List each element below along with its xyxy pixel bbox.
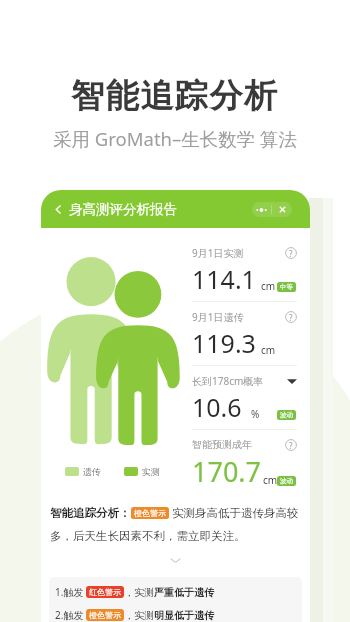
staticText: 波动: [280, 477, 293, 485]
button[interactable]: 9月1日遗传: [192, 302, 297, 365]
staticText: 2.触发: [55, 608, 86, 622]
staticText: 红色警示: [89, 587, 121, 597]
button[interactable]: More and close: [252, 202, 292, 217]
staticText: 9月1日实测: [192, 246, 244, 260]
staticText: 实测: [142, 466, 160, 477]
button[interactable]: 智能预测成年: [192, 430, 297, 495]
staticText: cm: [261, 343, 276, 357]
staticText: 中等: [280, 283, 293, 291]
staticText: 波动: [280, 411, 293, 419]
button[interactable]: Help: [285, 439, 297, 451]
staticText: 明显低于遗传: [154, 609, 214, 622]
staticText: 119.3: [192, 326, 256, 360]
button[interactable]: 9月1日实测: [192, 238, 297, 301]
staticText: 严重低于遗传: [154, 586, 214, 599]
staticText: ?: [289, 248, 293, 259]
staticText: 橙色警示: [134, 508, 166, 518]
staticText: 橙色警示: [89, 610, 121, 620]
staticText: 长到178cm概率: [192, 374, 264, 388]
staticText: ，实测: [124, 586, 154, 599]
staticText: ?: [289, 312, 293, 323]
staticText: 10.6: [192, 390, 242, 424]
button[interactable]: 实测: [124, 466, 160, 477]
staticText: 采用 GroMath–生长数学 算法: [53, 126, 298, 151]
staticText: 智能预测成年: [192, 438, 252, 451]
staticText: 多，后天生长因素不利，需立即关注。: [50, 529, 246, 543]
staticText: cm: [261, 279, 276, 293]
staticText: ，实测: [124, 609, 154, 622]
staticText: 114.1: [192, 262, 256, 296]
staticText: 170.7: [192, 453, 262, 490]
staticText: 遗传: [83, 466, 101, 477]
staticText: 1.触发: [55, 585, 86, 599]
staticText: ?: [289, 440, 293, 451]
button[interactable]: 遗传: [65, 466, 101, 477]
staticText: 智能追踪分析: [71, 75, 279, 117]
staticText: 身高测评分析报告: [69, 201, 177, 218]
staticText: 实测身高低于遗传身高较: [172, 506, 299, 520]
staticText: cm: [263, 473, 278, 487]
button[interactable]: Back: [52, 203, 65, 216]
button[interactable]: Help: [285, 311, 297, 323]
staticText: %: [251, 407, 260, 421]
button[interactable]: Help: [285, 247, 297, 259]
staticText: 9月1日遗传: [192, 310, 244, 324]
staticText: 智能追踪分析：: [50, 506, 131, 520]
button[interactable]: 长到178cm概率: [192, 366, 297, 429]
